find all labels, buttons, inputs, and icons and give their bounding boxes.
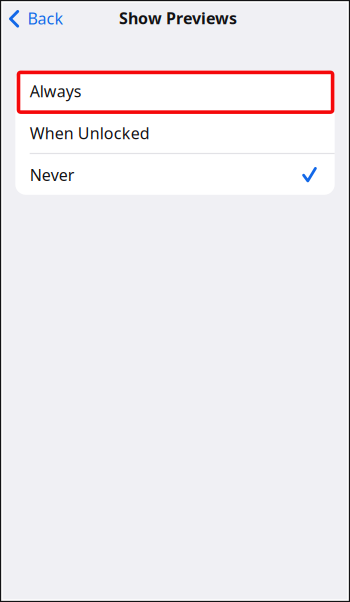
staticText: Show Previews — [119, 7, 237, 29]
staticText: Back — [28, 8, 64, 29]
staticText: Always — [30, 80, 82, 102]
button[interactable]: When Unlocked — [15, 112, 335, 153]
button[interactable]: Back — [0, 0, 73, 36]
button[interactable]: Always — [15, 70, 335, 111]
staticText: Never — [30, 164, 75, 185]
button[interactable]: Never — [15, 154, 335, 195]
staticText: When Unlocked — [30, 122, 150, 143]
